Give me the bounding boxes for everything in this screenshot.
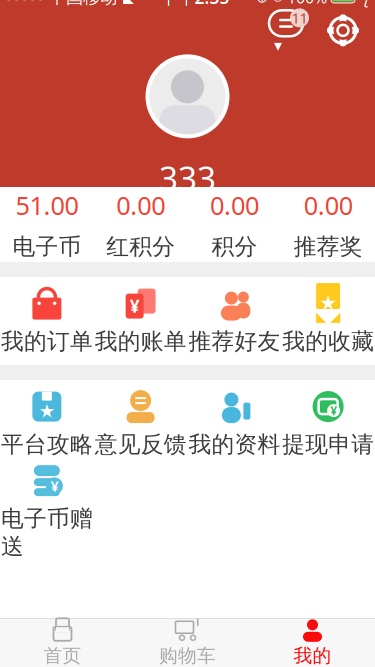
staticText: ⏱ — [272, 0, 283, 4]
button[interactable]: 意见反馈 — [94, 380, 188, 468]
staticText: 推荐奖 — [294, 233, 363, 261]
button[interactable]: Settings — [325, 12, 361, 48]
staticText: 意见反馈 — [95, 431, 187, 458]
staticText: ⊕ — [256, 0, 268, 6]
staticText: 电子币 — [12, 233, 81, 261]
staticText: 提现申请 — [282, 431, 374, 458]
button[interactable]: 我的订单 — [0, 277, 94, 365]
staticText: 积分 — [211, 233, 257, 261]
button[interactable]: ¥ — [281, 380, 375, 468]
staticText: ¥ — [130, 295, 140, 318]
staticText: 首页 — [43, 644, 81, 667]
staticText: ◢ — [330, 309, 340, 324]
staticText: 我的订单 — [1, 328, 93, 355]
staticText: 推荐好友 — [188, 328, 280, 355]
staticText: ★ — [319, 292, 337, 314]
staticText: ¥ — [50, 476, 58, 496]
staticText: 中国移动 — [49, 0, 117, 8]
staticText: 我的账单 — [95, 328, 187, 355]
staticText: 51.00 — [15, 188, 78, 222]
staticText: ¥ — [330, 403, 337, 418]
button[interactable]: ◥ — [0, 619, 125, 667]
staticText: 0.00 — [116, 188, 165, 222]
staticText: 电子币赠送 — [1, 505, 93, 560]
button[interactable]: 推荐好友 — [187, 277, 281, 365]
staticText: 333 — [159, 155, 216, 200]
button[interactable]: Profile photo — [144, 53, 230, 139]
staticText: 0.00 — [304, 188, 353, 222]
button[interactable]: ¥ — [94, 277, 188, 365]
staticText: 红积分 — [106, 233, 175, 261]
button[interactable]: 0.00 — [187, 187, 281, 262]
staticText: ◣ — [316, 309, 326, 324]
staticText: 我的 — [293, 644, 331, 667]
staticText: 我的收藏 — [282, 328, 374, 355]
staticText: 平台攻略 — [1, 431, 93, 458]
button[interactable]: 0.00 — [281, 187, 375, 262]
button[interactable]: 我的资料 — [187, 380, 281, 468]
staticText: 下午2:35 — [160, 0, 229, 9]
button[interactable]: ★ — [0, 380, 94, 468]
button[interactable]: 51.00 — [0, 187, 94, 262]
button[interactable]: 购物车 — [125, 619, 250, 667]
staticText: ◣ — [123, 0, 134, 6]
staticText: ϟ — [360, 0, 369, 8]
staticText: 11 — [291, 8, 307, 28]
button[interactable]: ◣ — [281, 277, 375, 365]
button[interactable]: Messages, 11 unread — [263, 8, 309, 52]
button[interactable]: 0.00 — [94, 187, 188, 262]
staticText: 100% — [287, 0, 327, 8]
button[interactable]: ¥ — [0, 468, 94, 556]
staticText: 0.00 — [210, 188, 259, 222]
button[interactable]: 我的 — [250, 619, 375, 667]
staticText: ▾ — [274, 36, 282, 54]
staticText: 购物车 — [159, 644, 216, 667]
staticText: 我的资料 — [188, 431, 280, 458]
staticText: ★ — [38, 400, 55, 422]
